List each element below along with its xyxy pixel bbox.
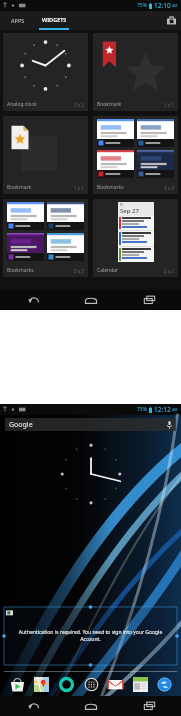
staticText: 12:10 (154, 1, 171, 10)
staticText: Google (9, 420, 33, 430)
button[interactable]: Shop (162, 11, 181, 30)
staticText: 75% (137, 406, 147, 413)
staticText: Bookmarks (97, 184, 124, 191)
staticText: 12:12 (154, 405, 171, 414)
staticText: AM (172, 3, 178, 8)
button[interactable]: Bookmarks (93, 116, 178, 194)
staticText: Authentication is required. You need to … (16, 629, 165, 643)
button[interactable]: Apps (81, 674, 101, 694)
button[interactable]: Back (14, 696, 52, 716)
button[interactable]: Maps (31, 674, 51, 694)
button[interactable]: WIDGETS (36, 11, 72, 30)
staticText: WIDGETS (42, 16, 67, 23)
staticText: 2 x 2 (164, 268, 174, 274)
staticText: M (120, 203, 123, 207)
staticText: Bookmark (7, 184, 32, 191)
button[interactable]: Back (14, 290, 52, 310)
staticText: Sep 27 (120, 207, 139, 215)
button[interactable]: Google (5, 418, 176, 431)
button[interactable]: Currents (56, 674, 76, 694)
button[interactable]: Home (72, 290, 110, 310)
button[interactable]: Bookmarks (3, 199, 88, 277)
staticText: AM (172, 407, 178, 412)
button[interactable]: Authentication is required. You need to … (4, 607, 177, 665)
button[interactable]: Browser (154, 674, 174, 694)
button[interactable]: APPS (0, 11, 36, 30)
button[interactable]: Play Store (7, 674, 27, 694)
button[interactable]: Bookmark (93, 33, 178, 111)
button[interactable]: M (93, 199, 178, 277)
button[interactable]: Recent apps (130, 290, 168, 310)
staticText: APPS (11, 17, 25, 24)
staticText: 1 x 1 (74, 185, 84, 191)
button[interactable]: Gmail (105, 674, 125, 694)
button[interactable]: Play Newsstand (130, 674, 150, 694)
staticText: Analog clock (7, 101, 37, 108)
staticText: Bookmark (97, 101, 122, 108)
staticText: Calendar (97, 267, 119, 274)
button[interactable]: Bookmark (3, 116, 88, 194)
button[interactable]: Analog clock (3, 33, 88, 111)
staticText: 3 x 3 (164, 185, 174, 191)
staticText: 75% (137, 2, 147, 9)
button[interactable]: Recent apps (130, 696, 168, 716)
button[interactable]: Home (72, 696, 110, 716)
staticText: 1 x 1 (164, 102, 174, 108)
staticText: Bookmarks (7, 267, 34, 274)
staticText: 2 x 2 (74, 102, 84, 108)
staticText: 3 x 3 (74, 268, 84, 274)
